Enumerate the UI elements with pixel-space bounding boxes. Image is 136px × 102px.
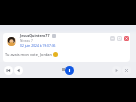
- staticText: Niveau 7: [20, 39, 33, 43]
- button[interactable]: Back: [14, 66, 23, 75]
- staticText: JesusQuintero77: [20, 33, 50, 38]
- button[interactable]: Skip to start: [4, 66, 13, 75]
- staticText: Tu avais mon vote, Jordan: [5, 52, 52, 57]
- button[interactable]: JesusQuintero77: [3, 33, 130, 62]
- button[interactable]: Maximize: [117, 36, 122, 41]
- button[interactable]: Minimize: [110, 36, 115, 41]
- staticText: 02 juin 2024 à 19:07:36: [20, 43, 56, 47]
- button[interactable]: Forward: [112, 66, 121, 75]
- button[interactable]: Stop: [122, 66, 131, 75]
- button[interactable]: Close: [124, 36, 129, 41]
- button[interactable]: Send: [65, 66, 74, 75]
